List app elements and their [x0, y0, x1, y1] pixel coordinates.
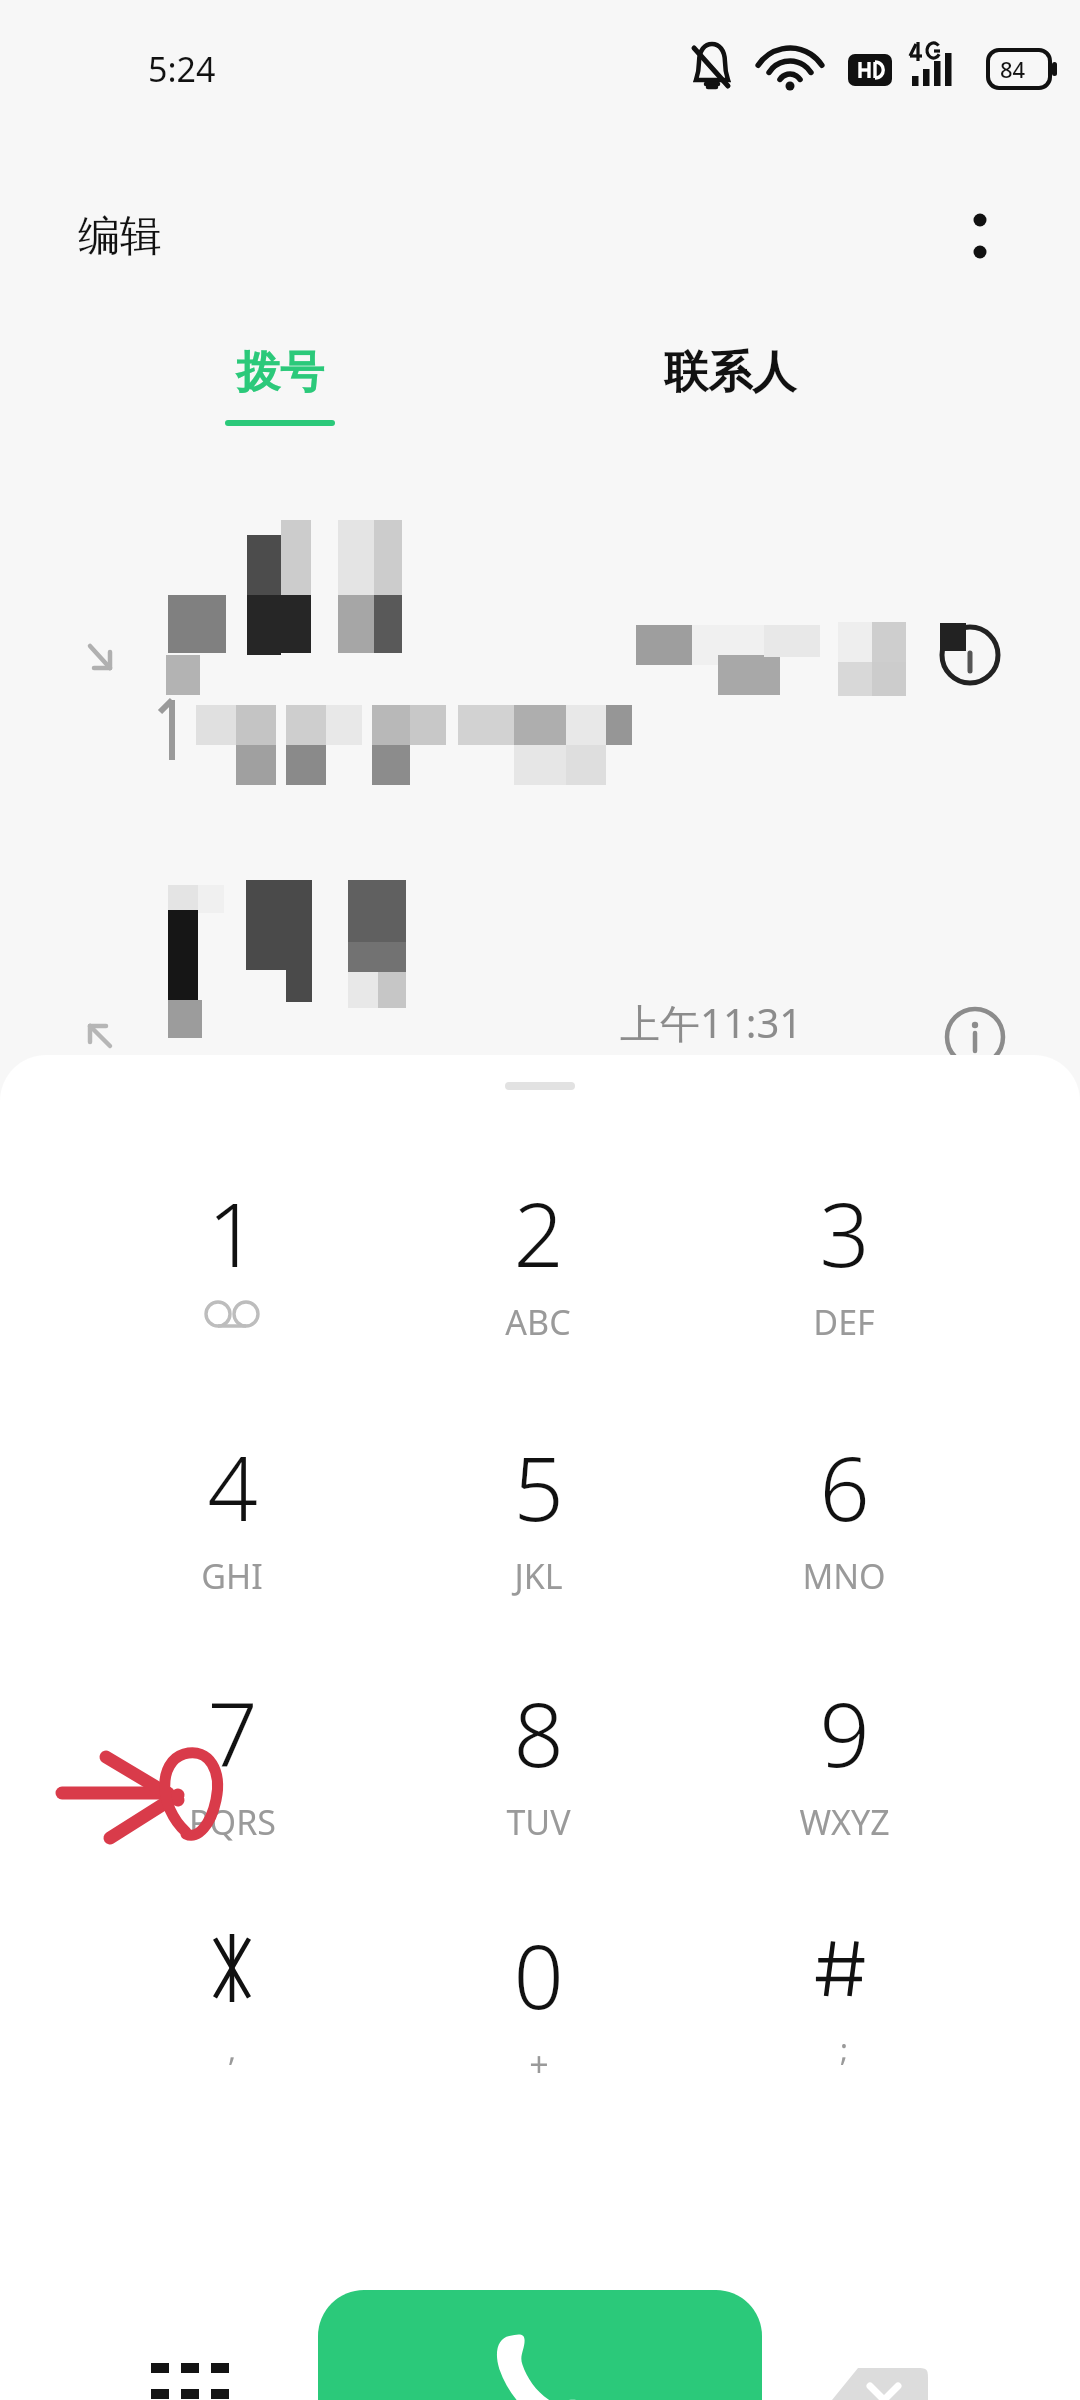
button[interactable]: Call	[318, 2290, 762, 2400]
button[interactable]: 9	[730, 1673, 958, 1893]
button[interactable]: Keypad	[115, 2325, 265, 2400]
button[interactable]: 8	[424, 1673, 652, 1893]
button[interactable]	[0, 820, 1080, 1050]
staticText: 编辑	[78, 210, 162, 263]
button[interactable]: 拨号	[180, 345, 380, 465]
button[interactable]: 0	[424, 1915, 652, 2135]
button[interactable]: ;	[730, 1915, 958, 2135]
button[interactable]	[0, 500, 1080, 760]
staticText: MNO	[802, 1553, 886, 1599]
button[interactable]: 编辑	[60, 200, 180, 273]
staticText: TUV	[506, 1799, 571, 1845]
staticText: 上午11:31	[620, 995, 803, 1050]
staticText: 5:24	[148, 46, 216, 92]
staticText: 84	[1000, 54, 1026, 84]
button[interactable]: ,	[118, 1915, 346, 2135]
staticText: ,	[228, 2029, 237, 2070]
button[interactable]: Backspace	[810, 2330, 950, 2400]
staticText: GHI	[201, 1553, 263, 1599]
staticText: 6	[819, 1427, 870, 1547]
button[interactable]: 4	[118, 1427, 346, 1647]
staticText: 9	[819, 1673, 870, 1793]
button[interactable]: More options	[940, 196, 1020, 276]
staticText: WXYZ	[799, 1799, 890, 1845]
staticText: 3	[819, 1173, 870, 1293]
button[interactable]: 7	[118, 1673, 346, 1893]
staticText: 4	[207, 1427, 258, 1547]
staticText: ABC	[505, 1299, 571, 1345]
button[interactable]: 联系人	[620, 345, 840, 465]
staticText: JKL	[514, 1553, 563, 1599]
button[interactable]: 2	[424, 1173, 652, 1393]
staticText: 0	[513, 1915, 564, 2035]
staticText: +	[529, 2041, 549, 2087]
button[interactable]: 1	[118, 1173, 346, 1393]
staticText: 8	[513, 1673, 564, 1793]
staticText: 1	[207, 1173, 258, 1293]
staticText: 5	[513, 1427, 564, 1547]
staticText: PQRS	[189, 1799, 276, 1845]
staticText: 7	[207, 1673, 258, 1793]
button[interactable]: 6	[730, 1427, 958, 1647]
staticText: DEF	[813, 1299, 875, 1345]
staticText: 联系人	[664, 345, 796, 400]
button[interactable]: 3	[730, 1173, 958, 1393]
button[interactable]: 5	[424, 1427, 652, 1647]
staticText: 2	[513, 1173, 564, 1293]
staticText: 拨号	[236, 345, 324, 400]
staticText: ;	[840, 2029, 849, 2070]
